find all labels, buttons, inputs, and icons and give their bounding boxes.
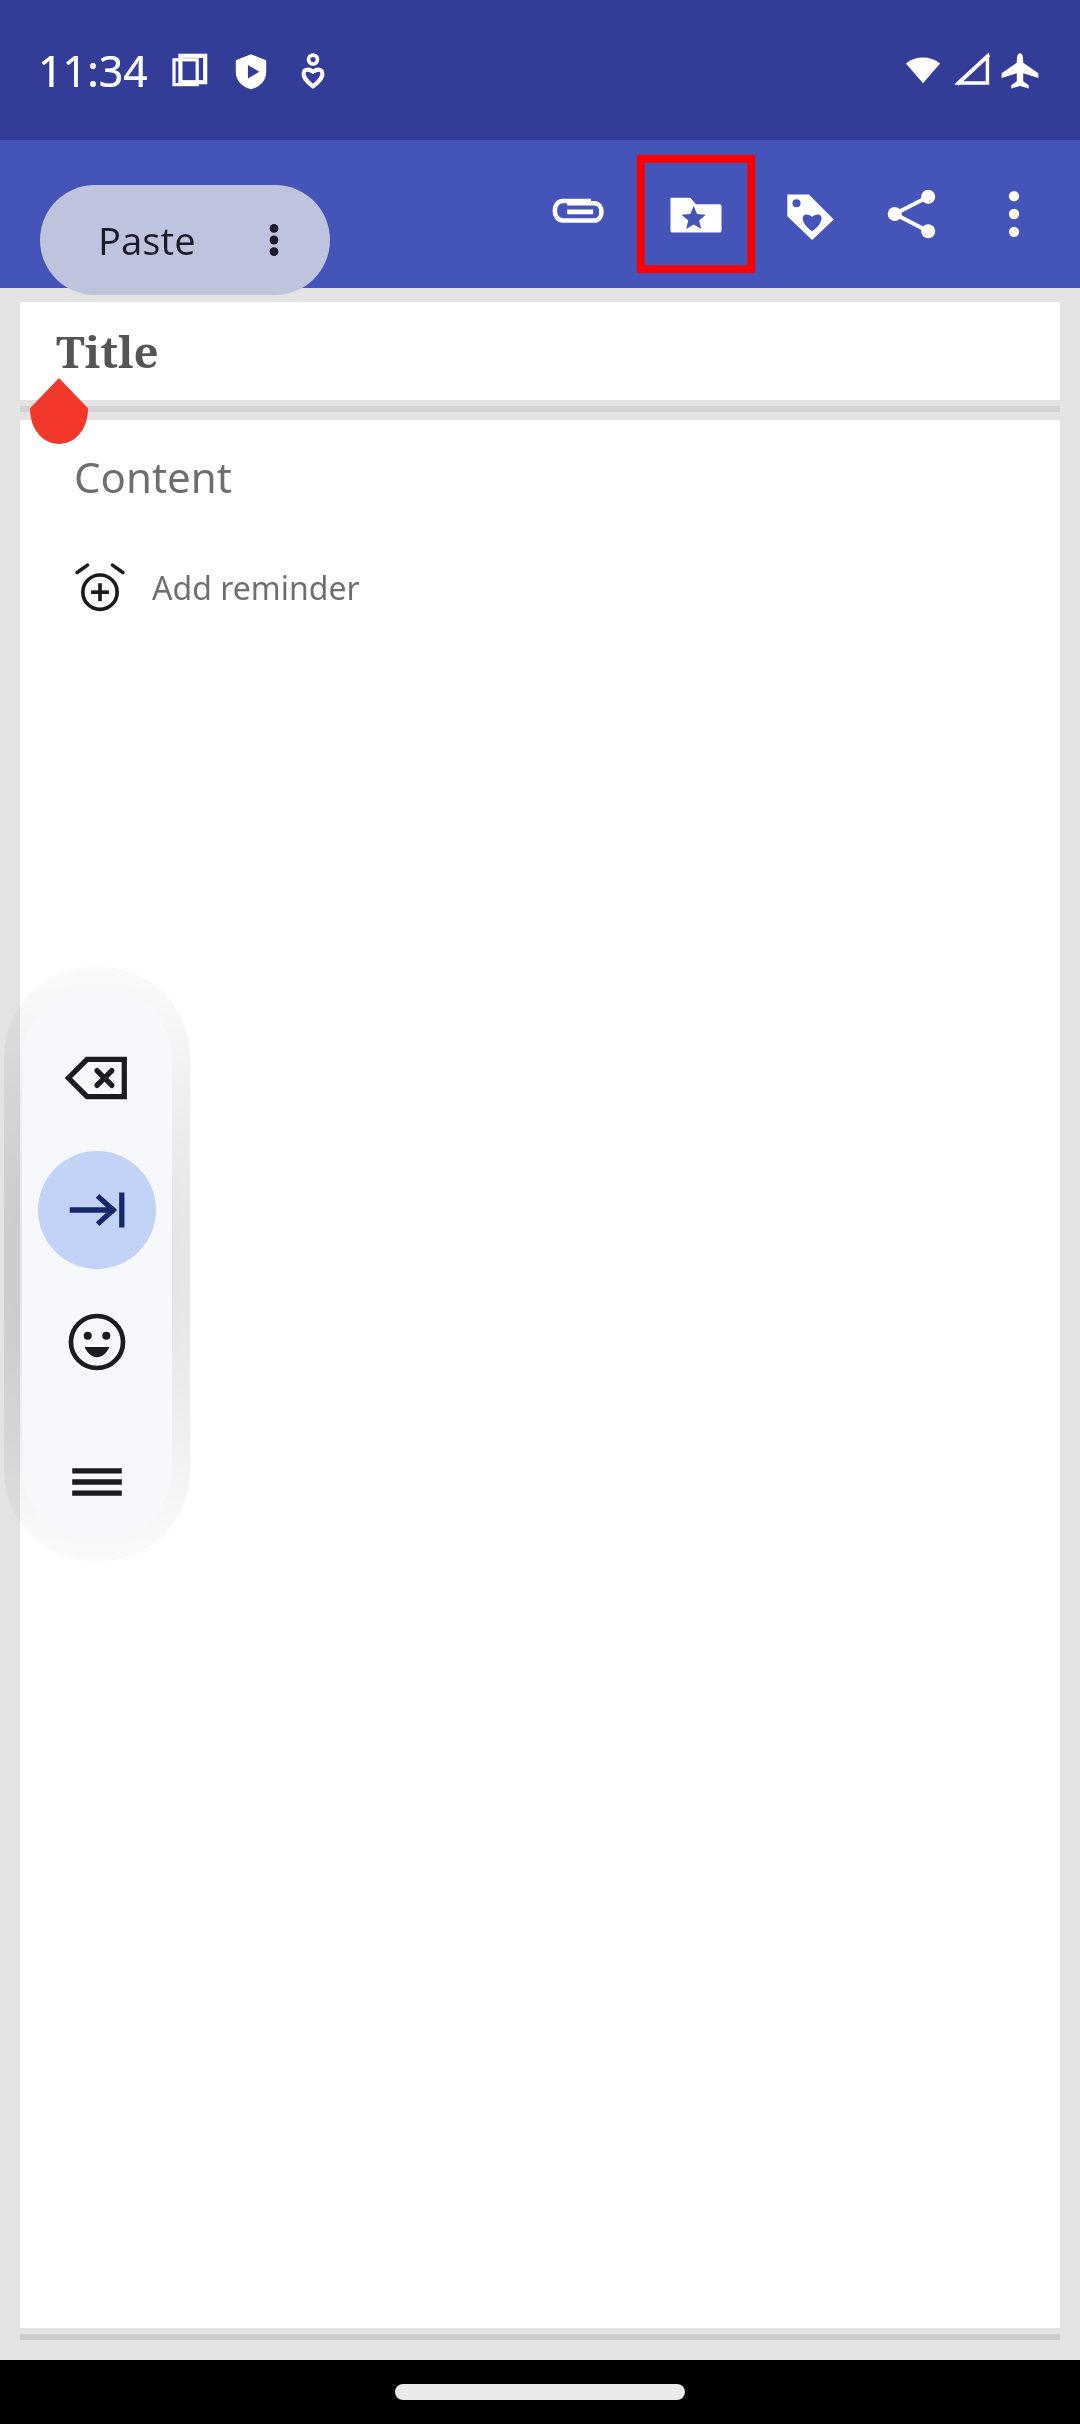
button[interactable]: More options <box>966 166 1062 262</box>
button[interactable]: Content <box>20 420 1060 2328</box>
button[interactable]: Keyboard settings <box>38 1423 156 1541</box>
button[interactable]: More clipboard options <box>252 218 296 262</box>
staticText: 11:34 <box>38 41 148 100</box>
button[interactable]: Tab <box>38 1151 156 1269</box>
button[interactable]: Add reminder <box>74 553 360 623</box>
button[interactable]: Title <box>20 302 1060 400</box>
button[interactable]: Labels <box>762 166 858 262</box>
staticText: Title <box>56 321 159 381</box>
button[interactable]: Attach <box>530 166 626 262</box>
staticText: Add reminder <box>152 566 360 610</box>
staticText: Paste <box>98 214 196 266</box>
button[interactable]: Paste <box>40 185 330 295</box>
button[interactable]: Emoji <box>38 1283 156 1401</box>
button[interactable]: Backspace <box>38 1019 156 1137</box>
button[interactable]: Share <box>864 166 960 262</box>
button[interactable]: Add to folder <box>636 154 756 274</box>
button[interactable]: Back <box>28 166 124 262</box>
staticText: Content <box>74 448 232 505</box>
